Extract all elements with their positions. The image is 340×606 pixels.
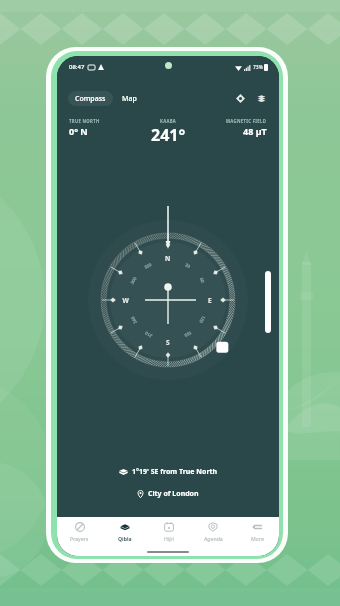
staticText: 08:47 <box>69 63 85 71</box>
button[interactable]: More <box>235 517 279 546</box>
button[interactable]: Hijri <box>147 517 191 546</box>
button[interactable]: Agenda <box>191 517 235 546</box>
staticText: 1°19' SE from True North <box>132 467 218 477</box>
staticText: Qibla <box>118 535 132 542</box>
button[interactable]: Compass <box>68 91 113 106</box>
button[interactable]: Map <box>117 91 142 106</box>
button[interactable]: Qibla <box>102 517 147 546</box>
staticText: MAGNETIC FIELD <box>226 118 267 124</box>
staticText: City of London <box>148 489 199 499</box>
button[interactable]: Settings <box>253 90 270 107</box>
staticText: Agenda <box>204 535 223 542</box>
button[interactable]: Locate <box>232 90 249 107</box>
button[interactable]: City of London <box>132 487 204 501</box>
button[interactable]: Prayers <box>57 517 102 546</box>
staticText: TRUE NORTH <box>69 118 100 124</box>
staticText: Hijri <box>164 535 175 542</box>
staticText: Prayers <box>70 535 89 542</box>
button[interactable]: 1°19' SE from True North <box>114 465 223 479</box>
staticText: Compass <box>75 94 106 104</box>
staticText: KAABA <box>160 118 177 124</box>
staticText: 241° <box>151 124 186 146</box>
staticText: More <box>251 535 264 542</box>
staticText: Map <box>122 94 137 104</box>
staticText: 73% <box>253 64 263 71</box>
staticText: 48 µT <box>243 125 267 137</box>
staticText: 0° N <box>69 125 88 137</box>
